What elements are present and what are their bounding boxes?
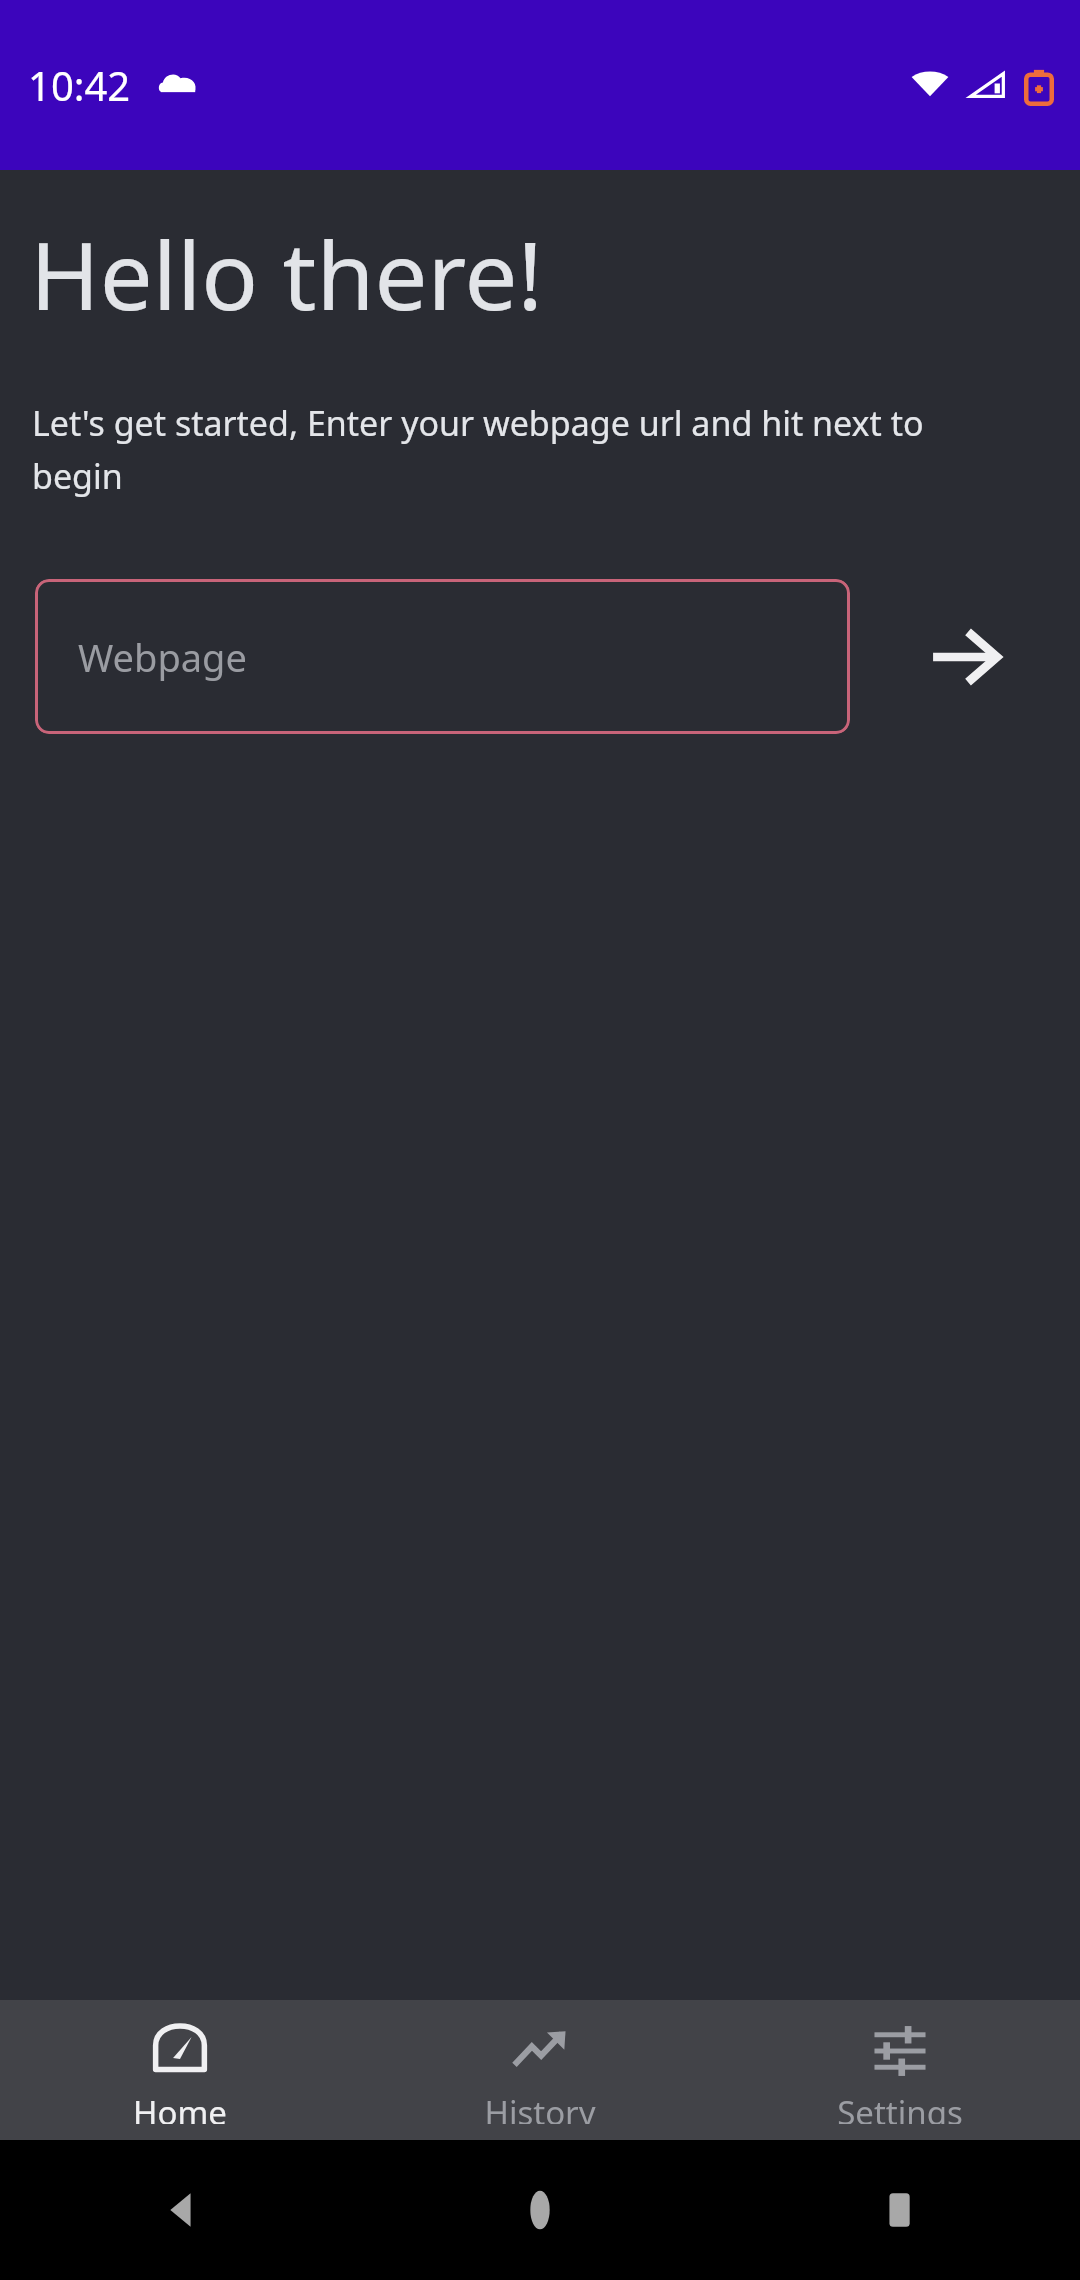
staticText: 10:42 — [28, 58, 131, 112]
staticText: Home — [133, 2090, 227, 2124]
button[interactable]: Home — [360, 2140, 720, 2280]
staticText: Hello there! — [30, 210, 543, 338]
staticText: Webpage — [78, 631, 247, 683]
button[interactable]: History — [360, 2000, 720, 2140]
button[interactable]: Recents — [720, 2140, 1080, 2280]
button[interactable]: Webpage — [35, 579, 850, 734]
button[interactable]: Home — [0, 2000, 360, 2140]
staticText: Let's get started, Enter your webpage ur… — [32, 400, 1020, 499]
button[interactable]: Settings — [720, 2000, 1080, 2140]
button[interactable]: Back — [0, 2140, 360, 2280]
staticText: History — [484, 2090, 596, 2124]
staticText: Settings — [837, 2090, 963, 2124]
button[interactable]: Next — [850, 579, 1080, 734]
